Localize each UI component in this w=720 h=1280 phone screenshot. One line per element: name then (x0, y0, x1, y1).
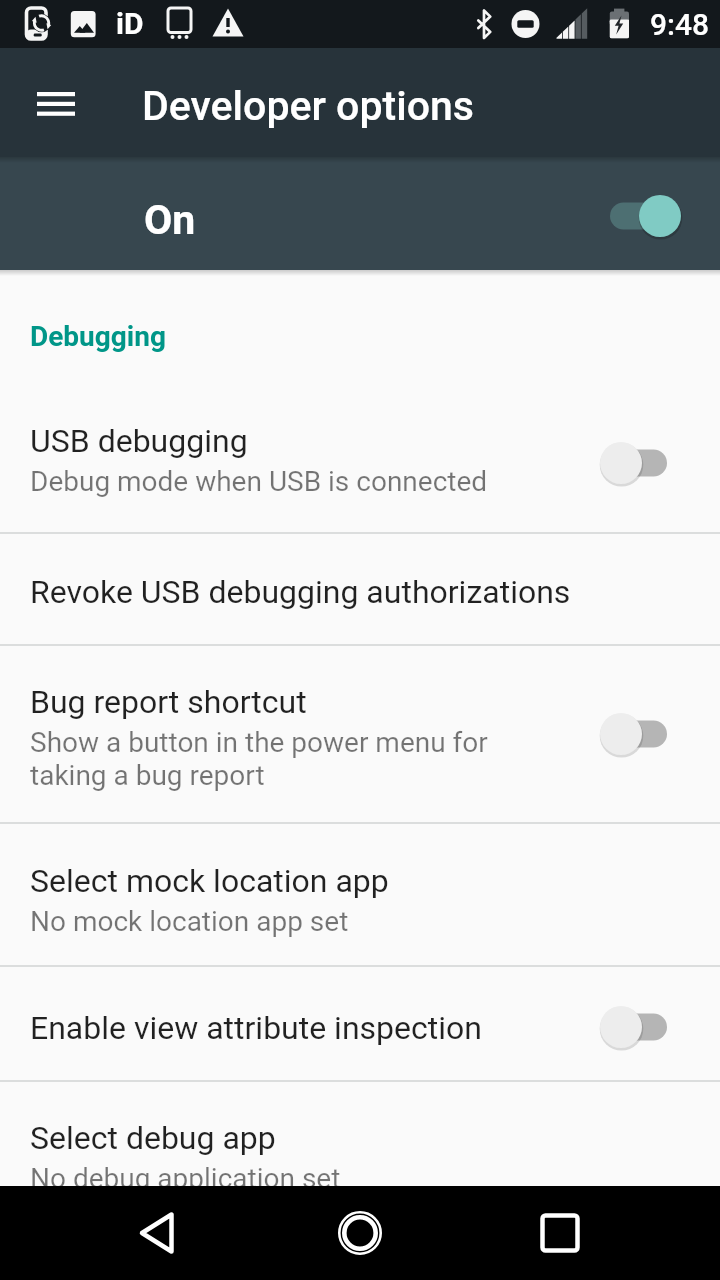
button[interactable]: Select debug app (0, 1082, 720, 1186)
button[interactable]: Select mock location app (0, 824, 720, 965)
button[interactable]: On (0, 157, 720, 270)
staticText: Debugging (30, 320, 166, 353)
button[interactable] (327, 1200, 393, 1266)
staticText: USB debugging (30, 422, 248, 460)
staticText: On (144, 196, 196, 244)
staticText: Select debug app (30, 1119, 276, 1157)
button[interactable]: USB debugging (0, 400, 720, 532)
staticText: Revoke USB debugging authorizations (30, 573, 571, 611)
button[interactable]: Revoke USB debugging authorizations (0, 534, 720, 644)
staticText: Show a button in the power menu for taki… (30, 726, 488, 792)
button[interactable] (600, 441, 681, 485)
staticText: Select mock location app (30, 862, 389, 900)
button[interactable] (127, 1200, 193, 1266)
button[interactable] (600, 194, 681, 238)
button[interactable]: Enable view attribute inspection (0, 967, 720, 1080)
staticText: Enable view attribute inspection (30, 1009, 482, 1047)
staticText: No mock location app set (30, 905, 349, 938)
staticText: Developer options (142, 82, 475, 130)
button[interactable] (22, 70, 88, 136)
staticText: iD (116, 6, 144, 41)
staticText: 9:48 (650, 7, 710, 42)
button[interactable] (600, 1005, 681, 1049)
button[interactable] (527, 1200, 593, 1266)
button[interactable] (600, 712, 681, 756)
staticText: No debug application set (30, 1162, 341, 1186)
staticText: Bug report shortcut (30, 683, 307, 721)
staticText: Debug mode when USB is connected (30, 465, 488, 498)
button[interactable]: Bug report shortcut (0, 646, 720, 822)
